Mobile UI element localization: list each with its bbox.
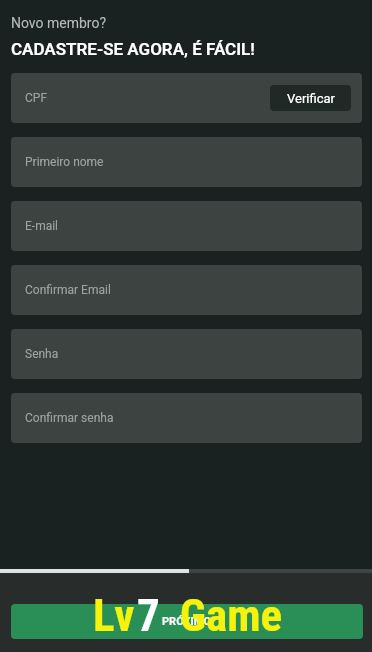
staticText: Confirmar Email: [25, 283, 111, 297]
staticText: PRÓXIMO: [162, 615, 212, 628]
staticText: Verificar: [287, 91, 335, 106]
staticText: Novo membro?: [11, 15, 107, 31]
button[interactable]: Confirmar Email: [11, 265, 362, 315]
button[interactable]: CPF: [11, 73, 362, 123]
button[interactable]: Confirmar senha: [11, 393, 362, 443]
button[interactable]: Primeiro nome: [11, 137, 362, 187]
staticText: Confirmar senha: [25, 411, 114, 425]
other: Progresso do cadastro: [0, 569, 372, 573]
button[interactable]: Senha: [11, 329, 362, 379]
staticText: CADASTRE-SE AGORA, É FÁCIL!: [11, 39, 255, 59]
staticText: E-mail: [25, 219, 59, 233]
staticText: CPF: [25, 91, 48, 105]
staticText: Lv7 Game: [93, 589, 283, 642]
staticText: Senha: [25, 347, 59, 361]
staticText: Primeiro nome: [25, 155, 104, 169]
button[interactable]: PRÓXIMO: [11, 604, 363, 639]
button[interactable]: Verificar: [270, 85, 351, 111]
button[interactable]: E-mail: [11, 201, 362, 251]
